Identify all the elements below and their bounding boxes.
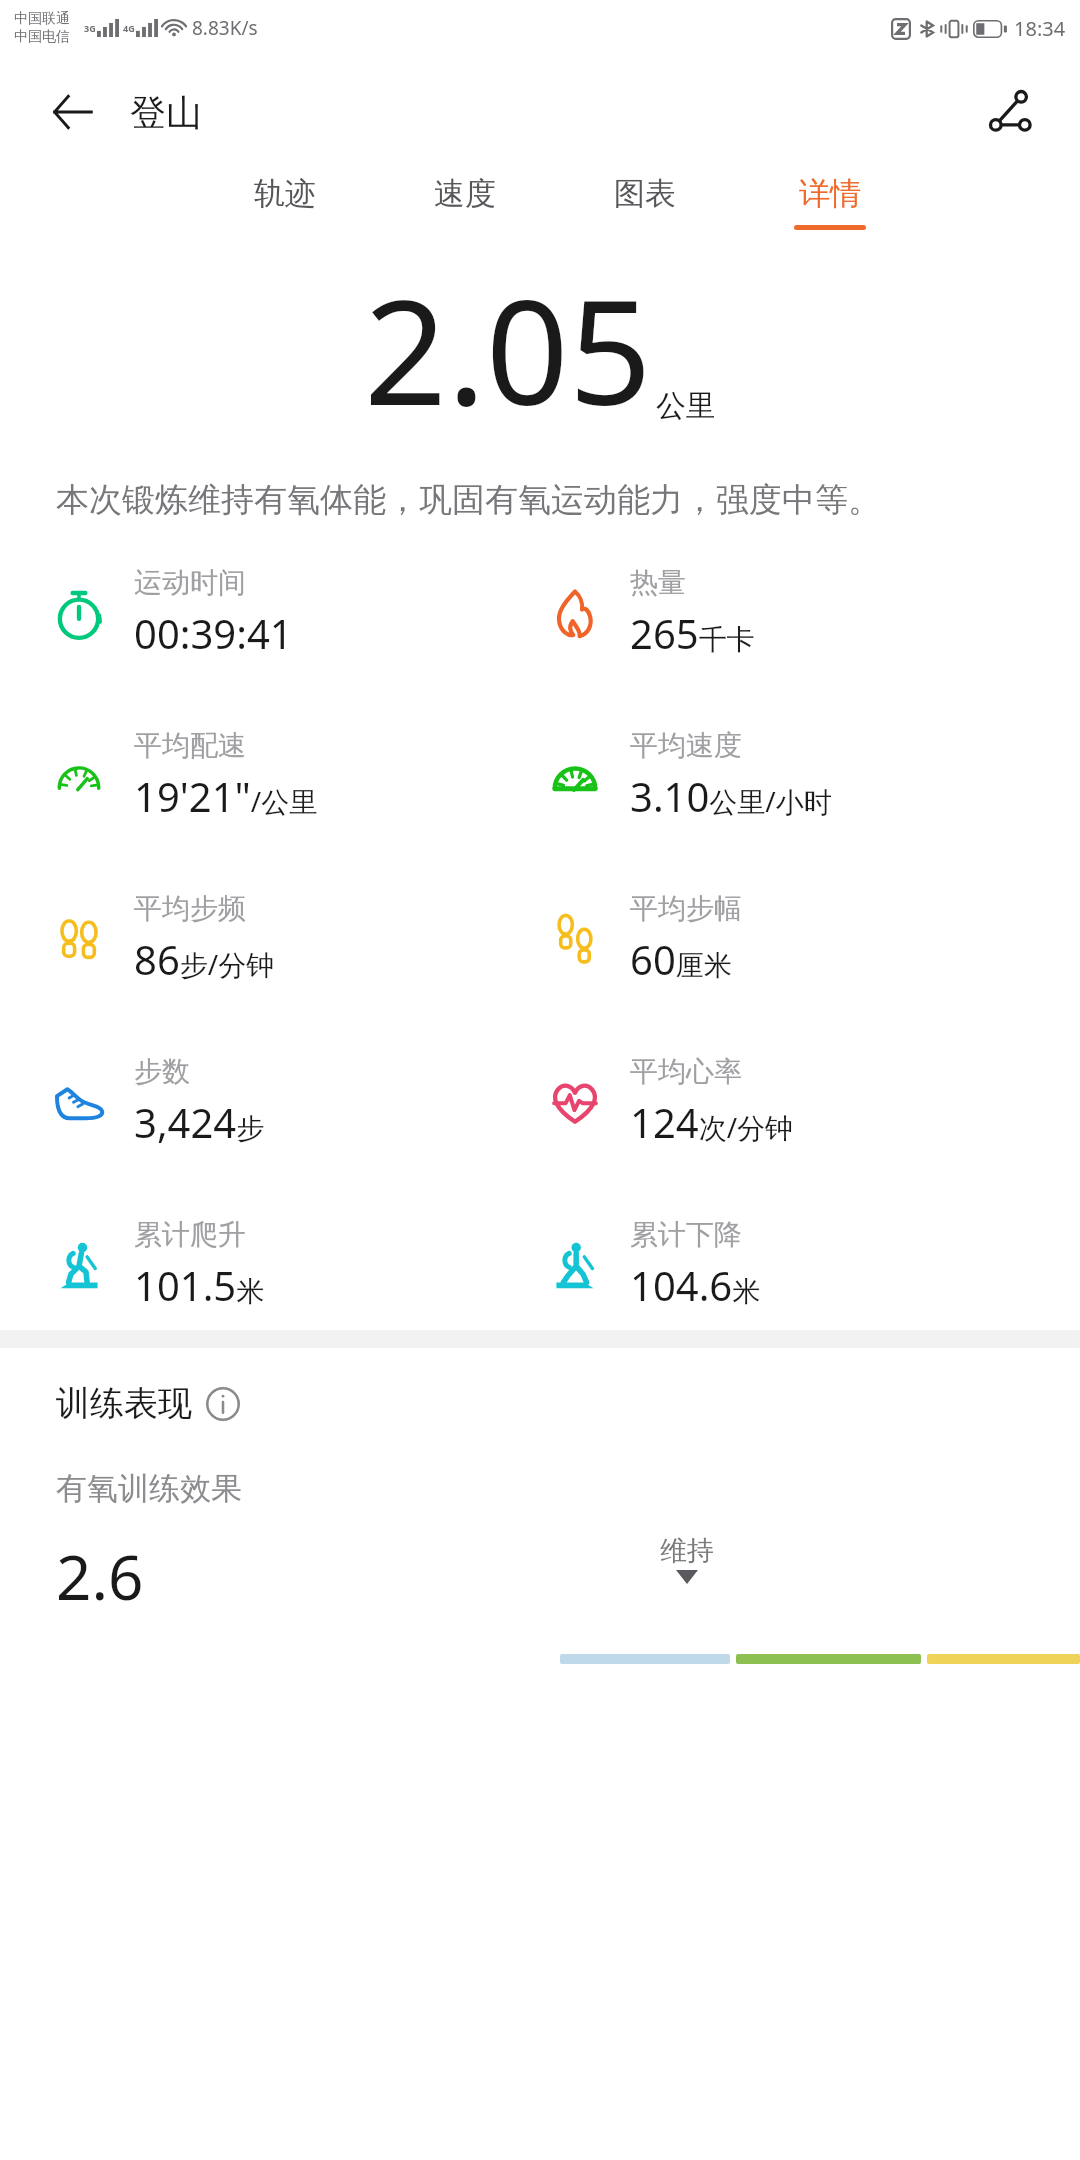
staticText: 累计爬升 (134, 1217, 246, 1252)
staticText: 平均步频 (134, 891, 246, 926)
button[interactable]: 累计下降 (540, 1217, 1080, 1312)
button[interactable]: 图表 (610, 168, 680, 236)
button[interactable]: 训练表现 (56, 1382, 246, 1425)
staticText: 公里 (656, 387, 716, 425)
staticText: 18:34 (1014, 15, 1066, 42)
staticText: 2.05 (364, 250, 652, 447)
button[interactable]: 累计爬升 (0, 1217, 540, 1312)
staticText: 运动时间 (134, 565, 246, 600)
staticText: 有氧训练效果 (56, 1469, 242, 1508)
staticText: 步数 (134, 1054, 190, 1089)
staticText: 3G (84, 22, 96, 34)
staticText: 登山 (130, 90, 202, 135)
button[interactable]: 平均步频 (0, 891, 540, 986)
staticText: 轨迹 (254, 174, 316, 213)
staticText: 60厘米 (630, 932, 732, 986)
button[interactable]: 平均步幅 (540, 891, 1080, 986)
button[interactable]: 运动时间 (0, 565, 540, 660)
staticText: 265千卡 (630, 606, 755, 660)
staticText: 19'21"/公里 (134, 769, 318, 823)
button[interactable]: Back (40, 80, 104, 144)
staticText: 3.10公里/小时 (630, 769, 832, 823)
button[interactable]: 平均心率 (540, 1054, 1080, 1149)
staticText: 维持 (660, 1534, 714, 1568)
button[interactable]: 步数 (0, 1054, 540, 1149)
staticText: 124次/分钟 (630, 1095, 794, 1149)
staticText: 训练表现 (56, 1382, 192, 1425)
button[interactable]: 平均配速 (0, 728, 540, 823)
staticText: 平均速度 (630, 728, 742, 763)
staticText: 8.83K/s (192, 15, 258, 41)
staticText: 平均配速 (134, 728, 246, 763)
button[interactable]: 轨迹 (250, 168, 320, 236)
button[interactable]: 平均速度 (540, 728, 1080, 823)
staticText: 中国电信 (14, 28, 70, 46)
staticText: 详情 (799, 174, 861, 213)
staticText: 101.5米 (134, 1258, 265, 1312)
staticText: 累计下降 (630, 1217, 742, 1252)
staticText: 2.6 (56, 1534, 144, 1618)
staticText: 3,424步 (134, 1095, 265, 1149)
other: Info (206, 1387, 240, 1421)
staticText: 本次锻炼维持有氧体能，巩固有氧运动能力，强度中等。 (56, 479, 1024, 521)
staticText: 中国联通 (14, 10, 70, 28)
staticText: 104.6米 (630, 1258, 761, 1312)
staticText: 图表 (614, 174, 676, 213)
staticText: 热量 (630, 565, 686, 600)
button[interactable]: 速度 (430, 168, 500, 236)
button[interactable]: Share (976, 77, 1046, 147)
staticText: 平均步幅 (630, 891, 742, 926)
button[interactable]: 热量 (540, 565, 1080, 660)
staticText: 00:39:41 (134, 606, 293, 660)
staticText: 86步/分钟 (134, 932, 275, 986)
button[interactable]: 详情 (790, 168, 870, 236)
staticText: 速度 (434, 174, 496, 213)
staticText: 平均心率 (630, 1054, 742, 1089)
staticText: 4G (123, 22, 135, 34)
